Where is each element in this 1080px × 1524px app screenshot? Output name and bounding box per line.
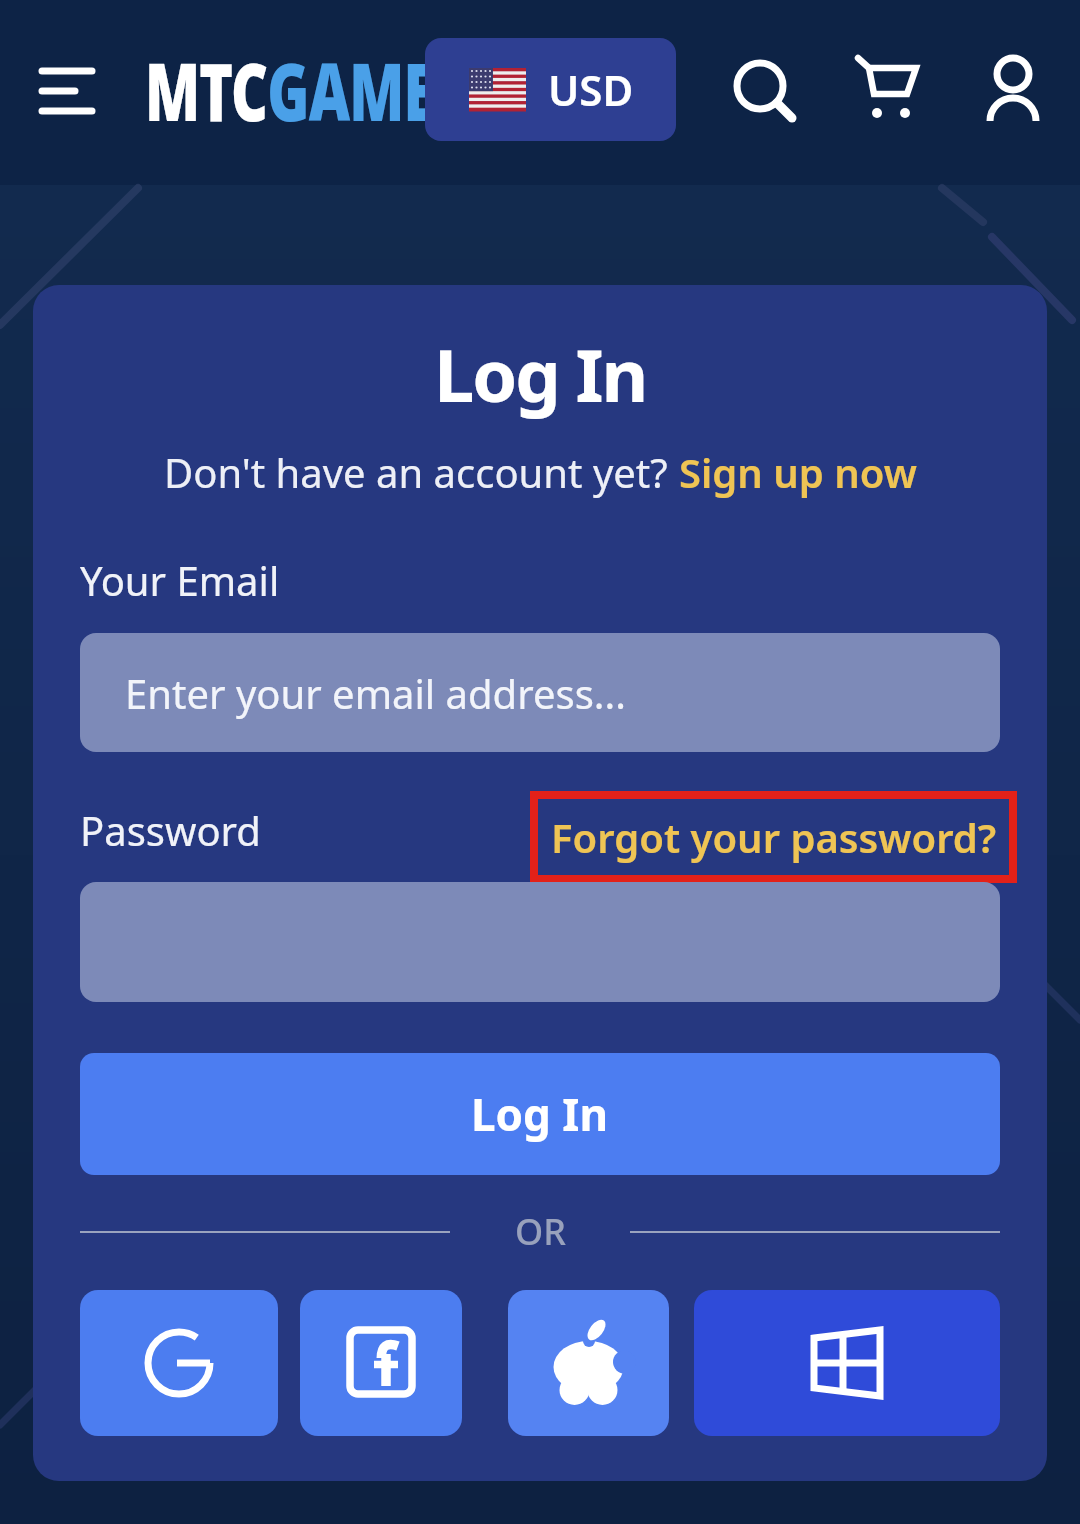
staticText: Log In bbox=[434, 325, 647, 423]
staticText: Log In bbox=[471, 1084, 609, 1144]
staticText: MTC bbox=[145, 35, 267, 144]
button[interactable]: Enter your email address... bbox=[80, 633, 1000, 752]
button[interactable]: USD bbox=[425, 38, 676, 141]
staticText: Your Email bbox=[80, 553, 280, 607]
button[interactable] bbox=[30, 55, 105, 125]
button[interactable] bbox=[300, 1290, 462, 1436]
staticText: OR bbox=[515, 1207, 566, 1256]
button[interactable] bbox=[508, 1290, 669, 1436]
button[interactable] bbox=[80, 1290, 278, 1436]
button[interactable] bbox=[725, 50, 805, 130]
staticText: Enter your email address... bbox=[125, 666, 626, 720]
staticText: USD bbox=[548, 61, 634, 118]
button[interactable] bbox=[975, 45, 1055, 125]
button[interactable]: Sign up now bbox=[679, 445, 917, 499]
button[interactable] bbox=[80, 882, 1000, 1002]
button[interactable] bbox=[845, 45, 930, 130]
staticText: Password bbox=[80, 803, 261, 857]
staticText: Forgot your password? bbox=[551, 810, 997, 864]
button[interactable] bbox=[694, 1290, 1000, 1436]
staticText: Don't have an account yet? bbox=[164, 445, 679, 499]
button[interactable]: Forgot your password? bbox=[530, 791, 1017, 883]
button[interactable]: Log In bbox=[80, 1053, 1000, 1175]
staticText: GAME bbox=[267, 35, 434, 144]
